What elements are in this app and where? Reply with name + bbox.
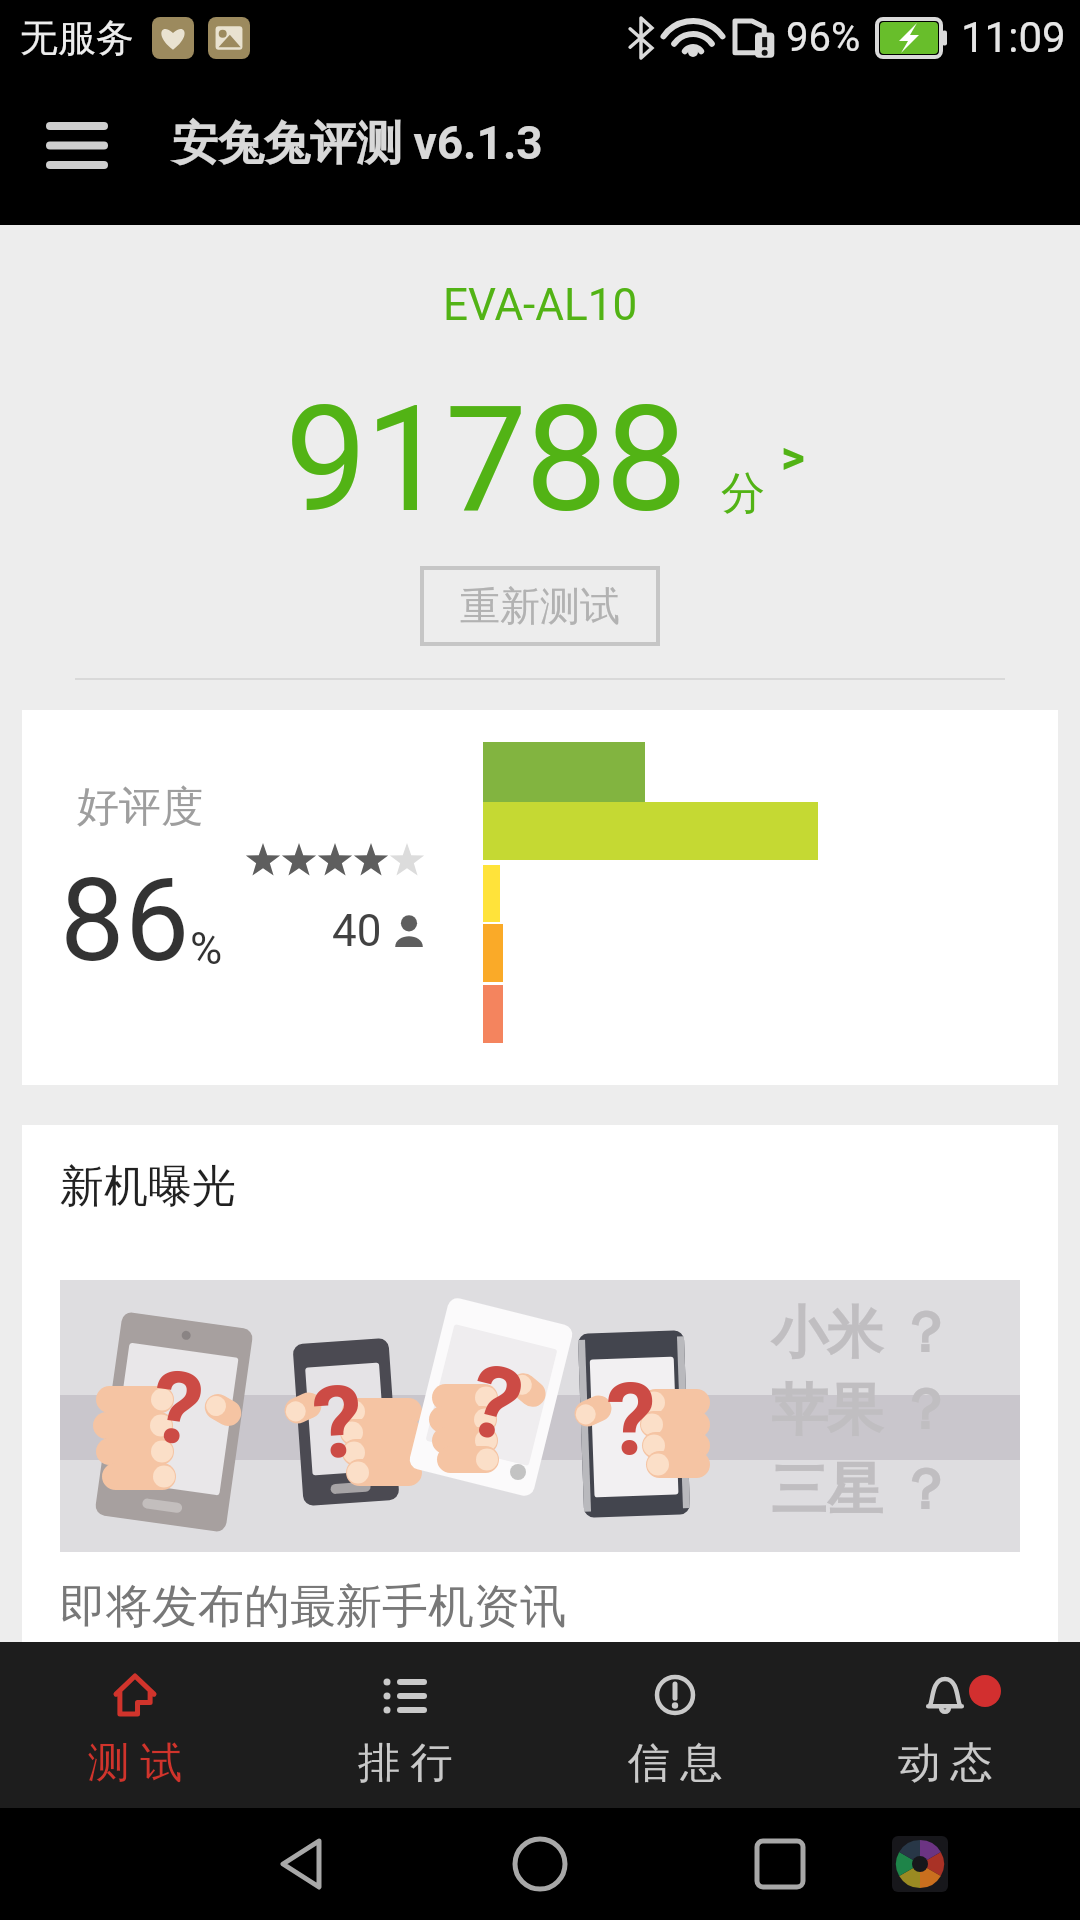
staticText: >	[781, 430, 805, 484]
staticText: 测 试	[88, 1737, 183, 1790]
staticText: 96%	[786, 14, 861, 61]
button[interactable]	[510, 1834, 570, 1894]
staticText: ?	[606, 1361, 656, 1478]
button[interactable]: 新机曝光	[22, 1125, 1058, 1642]
staticText: 无服务	[20, 14, 134, 62]
staticText: 86	[60, 853, 190, 988]
button[interactable]	[46, 118, 108, 166]
button[interactable]: 动 态	[810, 1642, 1080, 1808]
button[interactable]: 排 行	[270, 1642, 540, 1808]
staticText: 11:09	[961, 13, 1066, 62]
staticText: 重新测试	[460, 581, 620, 631]
staticText: 排 行	[358, 1737, 453, 1790]
staticText: 三星 ？	[771, 1455, 953, 1526]
button[interactable]	[750, 1834, 810, 1894]
button[interactable]: 信 息	[540, 1642, 810, 1808]
staticText: 动 态	[898, 1737, 993, 1790]
button[interactable]	[270, 1834, 330, 1894]
staticText: 分	[721, 466, 765, 521]
staticText: 91788	[285, 375, 686, 546]
staticText: 小米 ？	[771, 1298, 953, 1369]
staticText: 好评度	[77, 781, 203, 834]
staticText: %	[190, 923, 223, 975]
staticText: 苹果 ？	[771, 1375, 953, 1446]
button[interactable]: 重新测试	[420, 566, 660, 646]
staticText: 信 息	[628, 1737, 723, 1790]
staticText: 40	[332, 905, 382, 957]
staticText: ?	[457, 1341, 533, 1466]
staticText: ?	[144, 1347, 210, 1470]
button[interactable]: 测 试	[0, 1642, 270, 1808]
button[interactable]	[890, 1834, 950, 1894]
button[interactable]: 好评度	[22, 710, 1058, 1085]
staticText: EVA-AL10	[443, 279, 638, 331]
staticText: 安兔兔评测 v6.1.3	[172, 115, 543, 173]
staticText: 新机曝光	[60, 1159, 236, 1214]
staticText: 即将发布的最新手机资讯	[60, 1578, 566, 1636]
staticText: ?	[309, 1362, 367, 1483]
